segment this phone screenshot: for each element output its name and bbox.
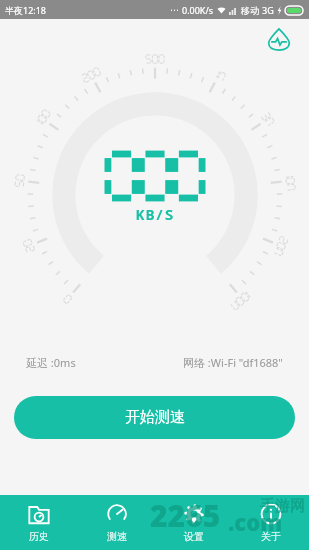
staticText: 半夜12:18 xyxy=(5,4,47,16)
staticText: 3G xyxy=(262,4,274,16)
staticText: 延迟 :0ms xyxy=(26,355,76,370)
staticText: 开始测速 xyxy=(125,408,185,427)
staticText: 测速 xyxy=(107,530,127,543)
staticText: 关于 xyxy=(261,530,281,543)
button[interactable]: 历史 xyxy=(0,495,78,550)
staticText: 移动 xyxy=(241,5,259,16)
staticText: 手游网 xyxy=(260,497,305,516)
button[interactable]: 关于 xyxy=(232,495,309,550)
staticText: ⋯ xyxy=(170,5,179,15)
staticText: 2265 xyxy=(150,495,221,536)
staticText: 0.00K/s xyxy=(182,4,214,16)
staticText: 网络 :Wi-Fi "df1688" xyxy=(183,355,283,370)
button[interactable]: Network quality xyxy=(265,25,293,53)
staticText: 历史 xyxy=(29,530,49,543)
button[interactable]: 设置 xyxy=(155,495,232,550)
staticText: .com xyxy=(228,507,283,537)
button[interactable]: 开始测速 xyxy=(14,396,295,439)
staticText: 设置 xyxy=(184,530,204,543)
staticText: KB/S xyxy=(136,204,175,224)
button[interactable]: 测速 xyxy=(78,495,155,550)
